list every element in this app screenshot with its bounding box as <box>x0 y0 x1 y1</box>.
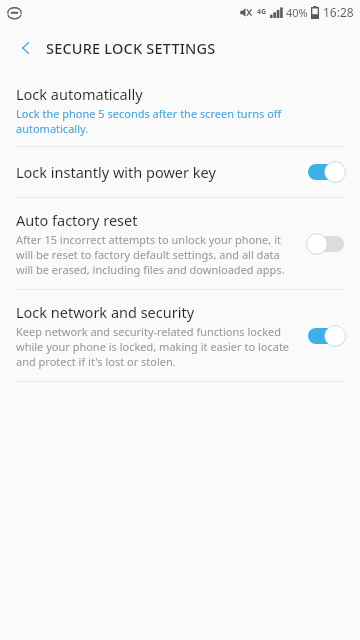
staticText: Keep network and security-related functi… <box>16 324 296 369</box>
staticText: Lock automatically <box>16 84 143 104</box>
staticText: 40% <box>286 5 308 20</box>
button[interactable]: Back <box>6 28 46 68</box>
button[interactable]: Lock automatically <box>0 72 360 146</box>
staticText: 4G <box>257 7 267 17</box>
staticText: Lock the phone 5 seconds after the scree… <box>16 106 346 136</box>
staticText: After 15 incorrect attempts to unlock yo… <box>16 232 296 277</box>
button[interactable]: Switch on <box>306 325 346 347</box>
staticText: 16:28 <box>323 4 354 20</box>
button[interactable]: Lock network and security <box>0 290 360 381</box>
staticText: Lock instantly with power key <box>16 162 216 182</box>
button[interactable]: Auto factory reset <box>0 198 360 289</box>
button[interactable]: Lock instantly with power key <box>0 147 360 197</box>
button[interactable]: Switch off <box>306 233 346 255</box>
button[interactable]: Switch on <box>306 161 346 183</box>
staticText: SECURE LOCK SETTINGS <box>46 38 216 58</box>
staticText: Lock network and security <box>16 302 195 322</box>
staticText: Auto factory reset <box>16 210 138 230</box>
